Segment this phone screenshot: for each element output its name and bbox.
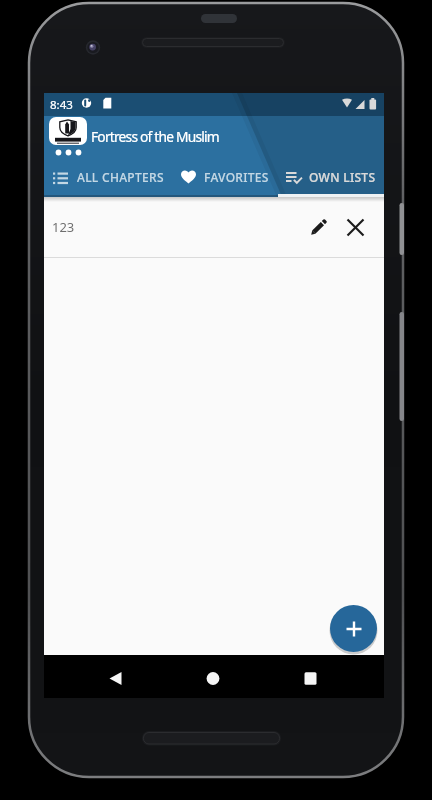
staticText: ALL CHAPTERS <box>77 169 164 185</box>
button[interactable]: ALL CHAPTERS <box>44 160 172 194</box>
staticText: OWN LISTS <box>309 169 376 185</box>
button[interactable] <box>271 655 384 698</box>
staticText: 8:43 <box>50 97 73 113</box>
staticText: Fortress of the Muslim <box>91 127 219 146</box>
staticText: 123 <box>52 218 300 236</box>
button[interactable]: FAVORITES <box>172 160 278 194</box>
button[interactable] <box>158 655 271 698</box>
button[interactable]: OWN LISTS <box>278 160 384 194</box>
button[interactable] <box>337 197 374 257</box>
button[interactable] <box>44 655 158 698</box>
button[interactable] <box>330 605 377 652</box>
button[interactable] <box>49 117 87 145</box>
button[interactable]: 123 <box>44 197 384 257</box>
staticText: FAVORITES <box>204 169 269 185</box>
button[interactable] <box>300 197 337 257</box>
